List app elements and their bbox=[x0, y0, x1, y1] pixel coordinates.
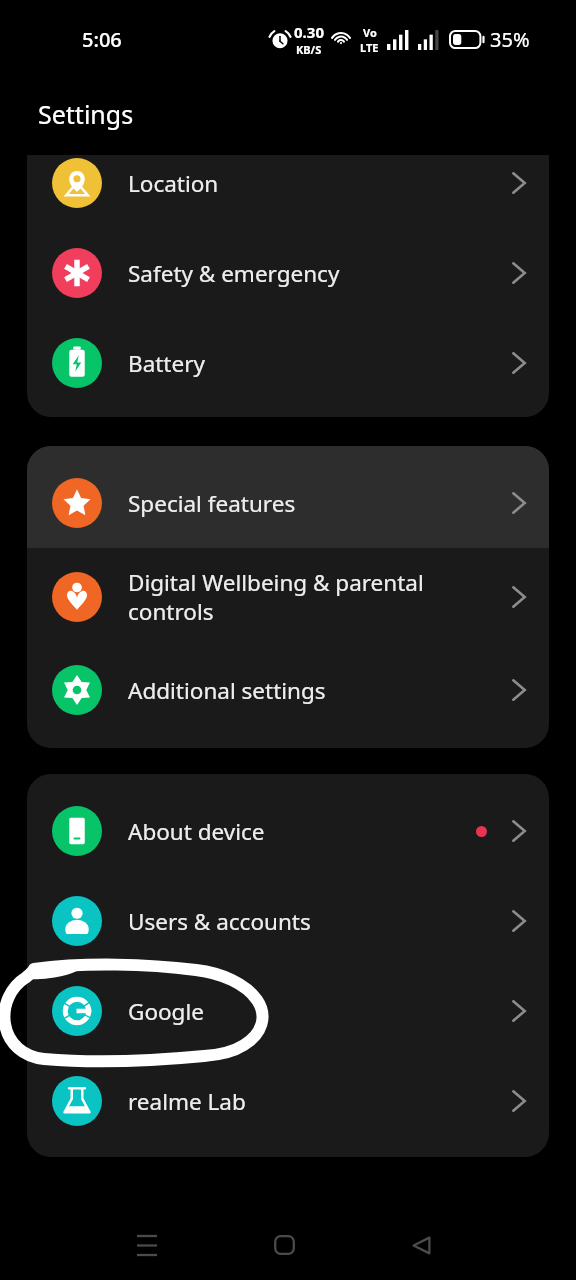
staticText: Additional settings bbox=[128, 675, 488, 706]
button[interactable]: Location bbox=[27, 138, 549, 228]
staticText: Battery bbox=[128, 348, 488, 379]
button[interactable]: Users & accounts bbox=[27, 876, 549, 966]
staticText: 5:06 bbox=[82, 26, 122, 53]
button[interactable]: Home bbox=[253, 1214, 315, 1276]
staticText: Settings bbox=[38, 97, 134, 131]
button[interactable]: Additional settings bbox=[27, 645, 549, 735]
button[interactable]: Safety & emergency bbox=[27, 228, 549, 318]
staticText: Users & accounts bbox=[128, 906, 488, 937]
button[interactable]: realme Lab bbox=[27, 1056, 549, 1146]
button[interactable]: Battery bbox=[27, 318, 549, 408]
staticText: KB/S bbox=[296, 42, 322, 57]
staticText: Special features bbox=[128, 488, 488, 519]
button[interactable]: About device bbox=[27, 786, 549, 876]
staticText: 0.30 bbox=[294, 22, 324, 42]
button[interactable]: Recent apps bbox=[116, 1214, 178, 1276]
button[interactable]: Google bbox=[27, 966, 549, 1056]
button[interactable]: Back bbox=[390, 1214, 452, 1276]
button[interactable]: Digital Wellbeing & parental controls bbox=[27, 548, 549, 645]
staticText: Vo bbox=[363, 25, 377, 40]
staticText: Location bbox=[128, 168, 488, 199]
staticText: About device bbox=[128, 816, 452, 847]
staticText: Digital Wellbeing & parental controls bbox=[128, 567, 488, 626]
button[interactable]: Special features bbox=[27, 446, 549, 548]
staticText: Google bbox=[128, 996, 488, 1027]
staticText: realme Lab bbox=[128, 1086, 488, 1117]
staticText: Safety & emergency bbox=[128, 258, 488, 289]
staticText: LTE bbox=[360, 40, 379, 55]
staticText: 35% bbox=[490, 26, 530, 53]
